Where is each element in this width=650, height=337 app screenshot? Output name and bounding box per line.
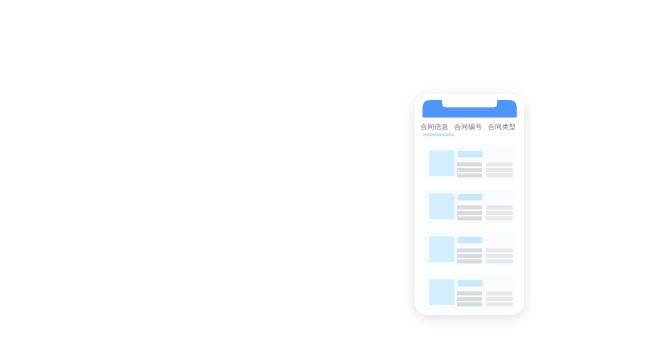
staticText: 合同编号 [454, 123, 482, 131]
button[interactable] [424, 232, 516, 267]
button[interactable] [424, 146, 516, 181]
staticText: 合同信息 [420, 123, 448, 131]
button[interactable]: 合同类型 [485, 123, 519, 131]
button[interactable] [424, 275, 516, 310]
button[interactable]: 合同信息 [417, 123, 451, 131]
button[interactable] [424, 189, 516, 224]
button[interactable]: 合同编号 [451, 123, 485, 131]
staticText: 合同类型 [488, 123, 516, 131]
